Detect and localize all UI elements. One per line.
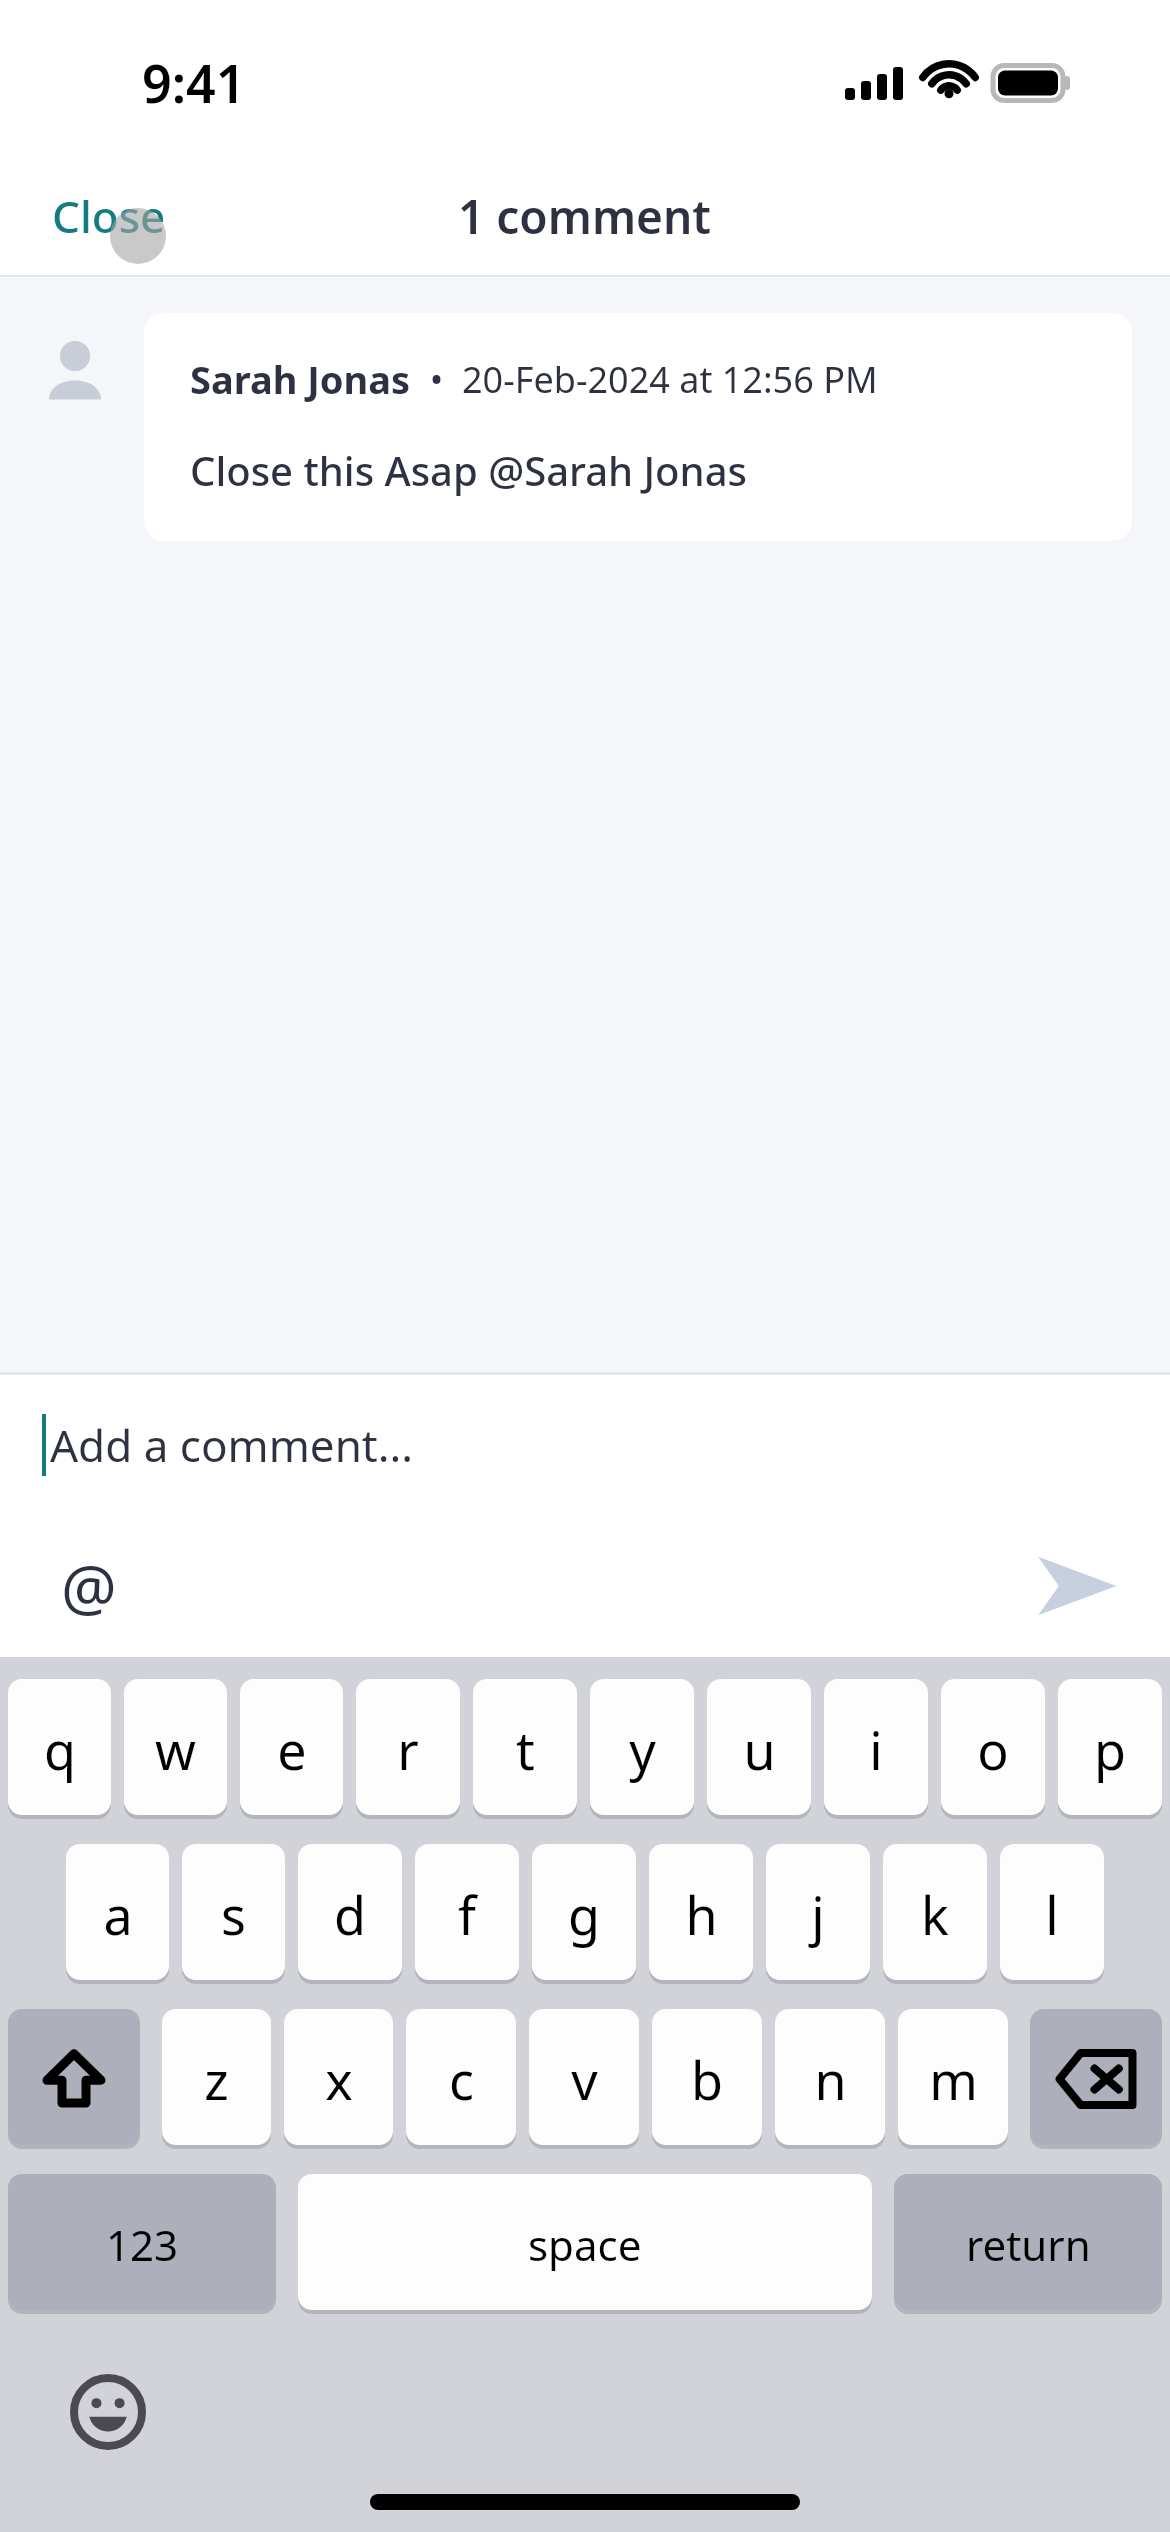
staticText: o [977,1714,1009,1785]
staticText: r [397,1714,419,1785]
staticText: a [103,1879,133,1950]
button[interactable]: b [652,2009,762,2149]
button[interactable]: f [415,1844,519,1984]
staticText: Close [52,186,166,246]
staticText: s [221,1879,246,1950]
button[interactable]: Mention someone [44,1541,134,1631]
staticText: • [411,355,462,404]
button[interactable]: e [240,1679,343,1819]
staticText: 1 comment [458,185,712,248]
staticText: 9:41 [142,47,246,118]
button[interactable]: Add a comment... [0,1375,1170,1515]
staticText: z [204,2044,229,2115]
staticText: Close this Asap @Sarah Jonas [190,443,747,497]
staticText: 123 [106,2216,179,2273]
staticText: d [334,1879,366,1950]
staticText: x [325,2044,353,2115]
button[interactable]: w [124,1679,227,1819]
staticText: u [743,1714,776,1785]
button[interactable]: space [298,2174,872,2314]
button[interactable]: j [766,1844,870,1984]
staticText: n [814,2044,847,2115]
staticText: @ [61,1544,117,1628]
button[interactable]: n [775,2009,885,2149]
button[interactable]: Shift [8,2009,140,2149]
button[interactable]: m [898,2009,1008,2149]
staticText: w [155,1714,196,1785]
staticText: return [966,2216,1091,2273]
button[interactable]: l [1000,1844,1104,1984]
staticText: space [528,2216,642,2273]
button[interactable]: Send comment [1026,1536,1126,1636]
button[interactable]: Sarah Jonas [144,313,1132,541]
button[interactable]: x [284,2009,393,2149]
button[interactable]: 123 [8,2174,276,2314]
staticText: e [277,1714,307,1785]
staticText: y [629,1714,656,1785]
staticText: 20-Feb-2024 at 12:56 PM [462,355,878,404]
button[interactable]: q [8,1679,111,1819]
staticText: g [568,1879,600,1950]
staticText: k [921,1879,949,1950]
button[interactable]: v [529,2009,639,2149]
button[interactable]: z [162,2009,271,2149]
button[interactable]: o [941,1679,1045,1819]
staticText: c [449,2044,474,2115]
button[interactable]: Backspace [1030,2009,1162,2149]
staticText: Sarah Jonas [190,353,411,405]
button[interactable]: y [590,1679,694,1819]
staticText: m [929,2044,978,2115]
button[interactable]: d [298,1844,402,1984]
staticText: q [44,1714,76,1785]
button[interactable]: k [883,1844,987,1984]
button[interactable]: Emoji keyboard [62,2366,154,2458]
button[interactable]: return [894,2174,1162,2314]
button[interactable]: h [649,1844,753,1984]
button[interactable]: r [356,1679,460,1819]
staticText: h [685,1879,718,1950]
staticText: Add a comment... [50,1415,414,1475]
button[interactable]: a [66,1844,169,1984]
button[interactable]: g [532,1844,636,1984]
button[interactable]: c [406,2009,516,2149]
staticText: l [1045,1879,1059,1950]
button[interactable]: Close [30,168,188,264]
button[interactable]: s [182,1844,285,1984]
button[interactable]: t [473,1679,577,1819]
staticText: v [571,2044,598,2115]
staticText: b [691,2044,723,2115]
button[interactable]: u [707,1679,811,1819]
staticText: p [1094,1714,1126,1785]
button[interactable]: p [1058,1679,1162,1819]
staticText: j [811,1879,825,1950]
staticText: f [458,1879,476,1950]
staticText: i [869,1714,883,1785]
button[interactable]: i [824,1679,928,1819]
staticText: t [516,1714,535,1785]
